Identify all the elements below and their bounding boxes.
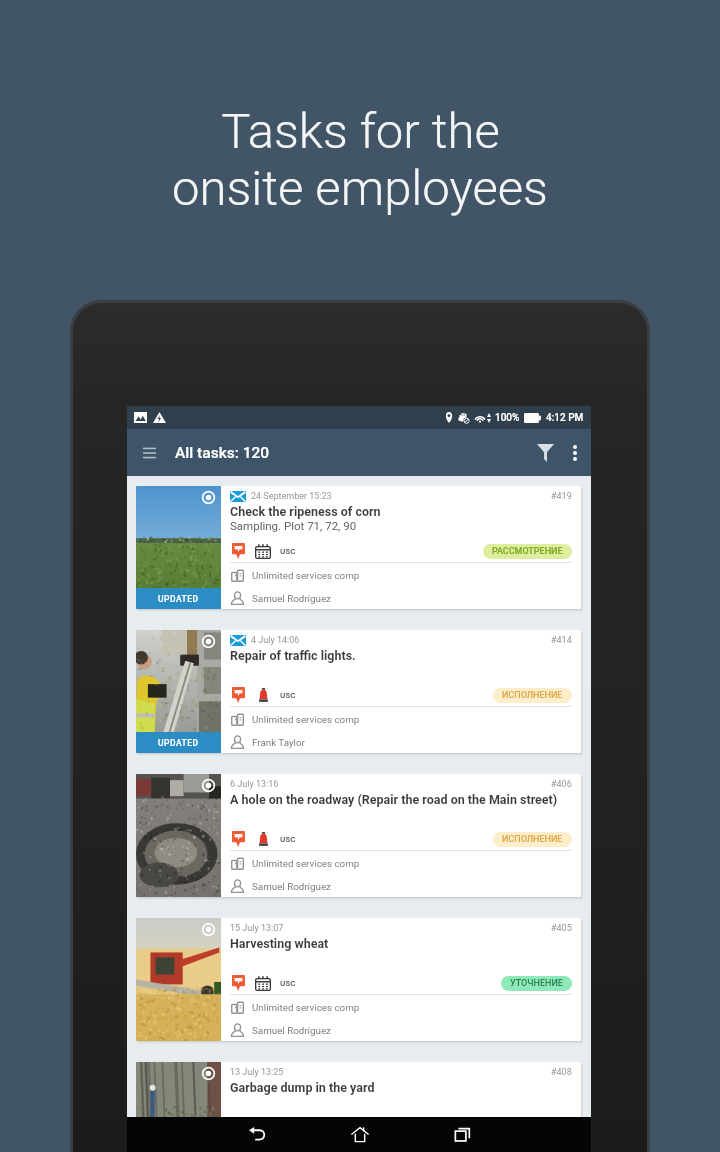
staticText: onsite employees <box>172 160 548 217</box>
staticText: #419 <box>551 491 572 502</box>
staticText: Repair of traffic lights. <box>230 648 356 663</box>
staticText: Garbage dump in the yard <box>230 1080 375 1095</box>
button[interactable]: Open navigation drawer <box>127 429 172 476</box>
staticText: УТОЧНЕНИЕ <box>510 978 563 989</box>
staticText: ИСПОЛНЕНИЕ <box>502 834 563 845</box>
button[interactable]: 6 July 13:16 <box>136 774 581 897</box>
button[interactable]: UPDATED <box>136 486 581 609</box>
staticText: ИСПОЛНЕНИЕ <box>502 690 563 701</box>
staticText: 4 July 14:06 <box>251 635 300 646</box>
staticText: #408 <box>551 1067 572 1078</box>
staticText: #405 <box>551 923 572 934</box>
staticText: Unlimited services comp <box>252 858 360 869</box>
staticText: A hole on the roadway (Repair the road o… <box>230 792 558 807</box>
staticText: Unlimited services comp <box>252 714 360 725</box>
staticText: 4:12 PM <box>546 412 584 424</box>
staticText: All tasks: 120 <box>175 444 270 462</box>
button[interactable]: Filter <box>532 429 558 476</box>
button[interactable]: More options <box>558 429 591 476</box>
staticText: Sampling. Plot 71, 72, 90 <box>230 519 357 532</box>
button[interactable]: Home <box>308 1117 411 1152</box>
staticText: Tasks for the <box>221 103 500 160</box>
button[interactable]: Recent apps <box>411 1117 514 1152</box>
staticText: Samuel Rodriguez <box>252 593 331 604</box>
staticText: 13 July 13:25 <box>230 1067 284 1078</box>
staticText: USC <box>280 547 296 556</box>
staticText: РАССМОТРЕНИЕ <box>492 546 563 557</box>
staticText: Harvesting wheat <box>230 936 329 951</box>
staticText: 24 September 15:23 <box>251 491 332 502</box>
staticText: #406 <box>551 779 572 790</box>
staticText: 100% <box>495 412 520 424</box>
staticText: #414 <box>551 635 572 646</box>
button[interactable]: UPDATED <box>136 630 581 753</box>
staticText: USC <box>280 979 296 988</box>
staticText: USC <box>280 835 296 844</box>
staticText: UPDATED <box>158 738 199 748</box>
button[interactable]: 15 July 13:07 <box>136 918 581 1041</box>
staticText: UPDATED <box>158 594 199 604</box>
button[interactable]: 13 July 13:25 <box>136 1062 581 1117</box>
staticText: 15 July 13:07 <box>230 923 284 934</box>
staticText: Unlimited services comp <box>252 1002 360 1013</box>
staticText: USC <box>280 691 296 700</box>
staticText: 6 July 13:16 <box>230 779 279 790</box>
staticText: Check the ripeness of corn <box>230 504 381 519</box>
staticText: Samuel Rodriguez <box>252 881 331 892</box>
staticText: Frank Taylor <box>252 737 305 748</box>
staticText: Unlimited services comp <box>252 570 360 581</box>
staticText: Samuel Rodriguez <box>252 1025 331 1036</box>
button[interactable]: Back <box>205 1117 308 1152</box>
